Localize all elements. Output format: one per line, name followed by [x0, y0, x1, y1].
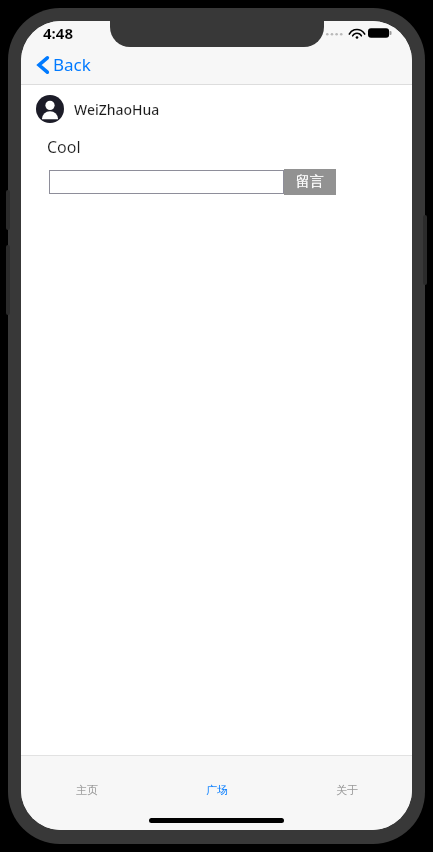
button[interactable]: 主页: [21, 783, 152, 830]
staticText: 广场: [206, 783, 228, 797]
staticText: 4:48: [43, 23, 73, 43]
other: Home indicator: [149, 818, 284, 823]
button[interactable]: WeiZhaoHua: [21, 93, 412, 125]
staticText: 主页: [76, 783, 98, 797]
staticText: Back: [53, 53, 91, 76]
staticText: Cool: [47, 136, 81, 158]
button[interactable]: 关于: [282, 783, 412, 830]
staticText: 留言: [296, 173, 324, 191]
button[interactable]: 广场: [152, 783, 282, 830]
staticText: WeiZhaoHua: [74, 100, 160, 119]
button[interactable]: [49, 170, 284, 194]
button[interactable]: 留言: [284, 169, 336, 195]
staticText: 关于: [336, 783, 358, 797]
button[interactable]: Back: [34, 49, 94, 80]
